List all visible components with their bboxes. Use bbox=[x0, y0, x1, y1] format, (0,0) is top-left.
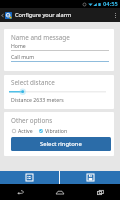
staticText: Distance 2633 meters bbox=[11, 96, 64, 103]
button[interactable]: Home bbox=[11, 42, 109, 51]
button[interactable]: Show on map bbox=[0, 171, 59, 184]
staticText: Vibration bbox=[45, 127, 68, 134]
button[interactable]: Active bbox=[12, 127, 33, 134]
button[interactable]: Distance slider bbox=[9, 87, 106, 96]
staticText: Select ringtone bbox=[40, 140, 82, 148]
staticText: Configure your alarm bbox=[15, 11, 110, 19]
button[interactable]: Back bbox=[0, 184, 40, 200]
button[interactable]: Recent apps bbox=[80, 184, 120, 200]
button[interactable]: Home bbox=[40, 184, 80, 200]
staticText: Active bbox=[18, 127, 33, 134]
staticText: 04:55 bbox=[103, 0, 118, 8]
button[interactable]: Call mum bbox=[11, 53, 109, 62]
button[interactable]: More options bbox=[110, 8, 120, 22]
button[interactable]: Select ringtone bbox=[11, 137, 111, 151]
staticText: Name and message bbox=[11, 33, 70, 42]
staticText: Select distance bbox=[11, 78, 55, 87]
button[interactable]: Vibration bbox=[39, 127, 68, 134]
button[interactable]: Navigate up bbox=[1, 8, 12, 22]
button[interactable]: Save bbox=[60, 171, 120, 184]
staticText: Home bbox=[11, 42, 26, 49]
staticText: Other options bbox=[11, 116, 53, 125]
staticText: Call mum bbox=[11, 53, 35, 60]
